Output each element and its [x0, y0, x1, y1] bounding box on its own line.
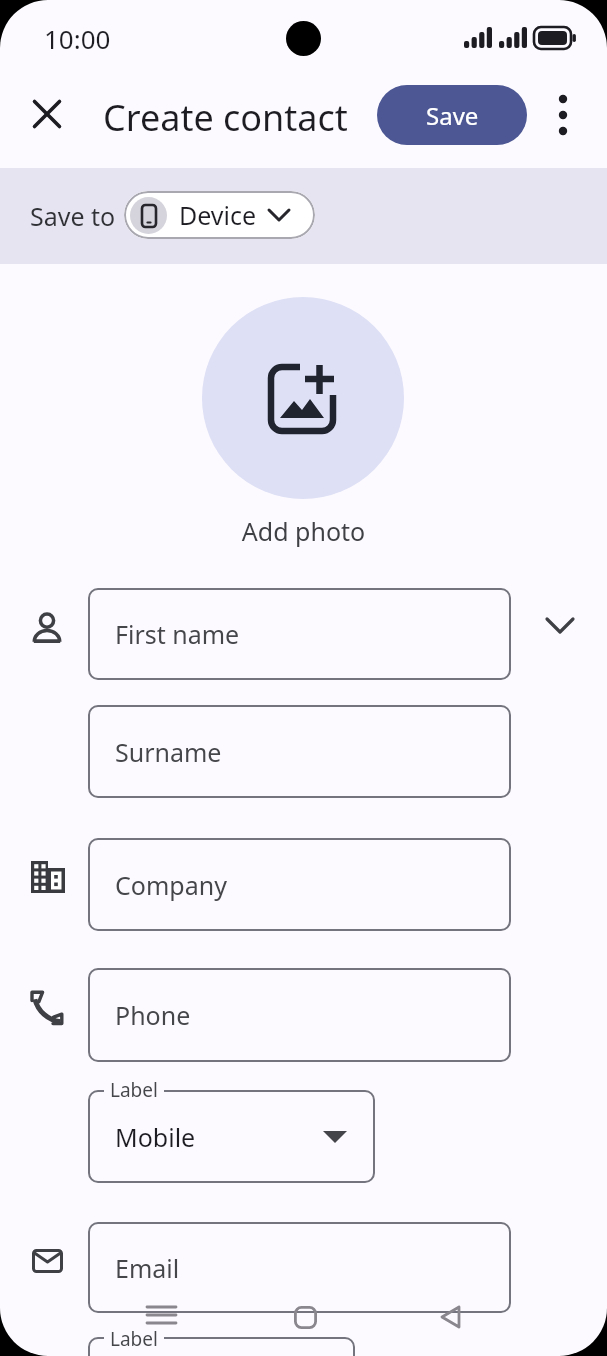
button[interactable]: Save: [377, 85, 527, 145]
staticText: Email: [115, 1251, 180, 1285]
staticText: First name: [115, 617, 240, 651]
button[interactable]: [439, 1305, 461, 1329]
button[interactable]: First name: [88, 588, 511, 680]
button[interactable]: Mobile: [88, 1090, 375, 1183]
staticText: Device: [179, 198, 257, 232]
staticText: Phone: [115, 998, 191, 1032]
button[interactable]: [34, 101, 60, 127]
staticText: Label: [110, 1326, 158, 1352]
button[interactable]: [147, 1305, 177, 1327]
staticText: Mobile: [115, 1120, 196, 1154]
button[interactable]: [546, 617, 574, 635]
staticText: Create contact: [103, 93, 348, 142]
button[interactable]: [202, 297, 404, 499]
staticText: Label: [110, 1077, 158, 1103]
staticText: Company: [115, 868, 227, 902]
button[interactable]: Company: [88, 838, 511, 931]
button[interactable]: Phone: [88, 968, 511, 1062]
button[interactable]: Device: [124, 191, 315, 239]
staticText: Save to: [30, 199, 116, 233]
button[interactable]: Email: [88, 1222, 511, 1313]
button[interactable]: [551, 93, 575, 137]
staticText: Save: [426, 99, 479, 132]
staticText: Add photo: [0, 514, 607, 548]
staticText: Surname: [115, 735, 222, 769]
button[interactable]: Surname: [88, 705, 511, 798]
button[interactable]: [294, 1306, 317, 1329]
staticText: 10:00: [44, 21, 111, 56]
